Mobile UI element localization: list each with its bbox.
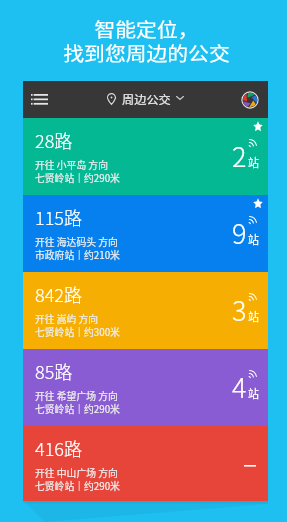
staticText: 2 — [232, 136, 247, 175]
staticText: 开往 中山广场 方向 七贤岭站｜约290米 — [35, 466, 120, 493]
staticText: 115路 — [35, 204, 82, 230]
button[interactable]: 周边公交 — [101, 83, 187, 116]
button[interactable]: 842路 — [23, 272, 268, 349]
staticText: 开往 希望广场 方向 七贤岭站｜约290米 — [35, 389, 120, 416]
staticText: 站 — [248, 231, 259, 247]
staticText: 842路 — [35, 281, 82, 307]
staticText: 智能定位， 找到您周边的公交 — [0, 15, 287, 67]
button[interactable]: 416路 — [23, 426, 268, 501]
staticText: 85路 — [35, 358, 73, 384]
button[interactable]: Open navigation menu — [23, 82, 55, 117]
button[interactable]: 115路 — [23, 195, 268, 272]
staticText: 站 — [248, 154, 259, 170]
staticText: 站 — [248, 308, 259, 324]
staticText: 28路 — [35, 127, 73, 153]
staticText: 4 — [232, 367, 247, 406]
staticText: 9 — [232, 213, 247, 252]
staticText: 开往 海达码头 方向 市政府站｜约210米 — [35, 235, 120, 262]
staticText: 周边公交 — [122, 92, 171, 108]
staticText: 开往 小平岛 方向 七贤岭站｜约290米 — [35, 158, 120, 185]
button[interactable]: Account — [232, 81, 267, 118]
button[interactable]: 28路 — [23, 118, 268, 195]
staticText: 开往 嵩屿 方向 七贤岭站｜约300米 — [35, 312, 120, 339]
staticText: 3 — [232, 290, 247, 329]
button[interactable]: 85路 — [23, 349, 268, 426]
staticText: 416路 — [35, 435, 82, 461]
staticText: 站 — [248, 385, 259, 401]
